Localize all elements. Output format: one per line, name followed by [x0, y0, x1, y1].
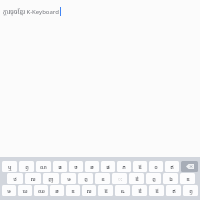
staticText: ឃ [22, 187, 28, 194]
button[interactable]: ញ [43, 173, 59, 184]
staticText: ឪ [155, 187, 159, 194]
button[interactable]: ឬ [2, 161, 17, 172]
staticText: ភ [122, 163, 126, 170]
button[interactable]: ឥ [166, 185, 181, 196]
staticText: ឪ [138, 163, 142, 170]
staticText: ឱ [104, 187, 108, 194]
button[interactable]: ០ [149, 161, 163, 172]
button[interactable]: ធ [53, 161, 67, 172]
button[interactable]: ឍ [82, 185, 96, 196]
button[interactable]: ឈ [34, 185, 48, 196]
button[interactable]: ឩ [115, 185, 130, 196]
staticText: ឰ [152, 175, 156, 182]
button[interactable]: ភ [117, 161, 131, 172]
staticText: ឳ [135, 175, 139, 182]
staticText: ឍ [86, 187, 92, 194]
button[interactable]: ៈ [112, 173, 127, 184]
staticText: ឧ [101, 175, 105, 182]
button[interactable]: ឱ [98, 185, 113, 196]
button[interactable]: ឯ [163, 173, 178, 184]
staticText: ឞ [67, 175, 71, 182]
staticText: ឭ [189, 187, 193, 194]
button[interactable]: ឭ [183, 185, 198, 196]
staticText: ណ [40, 163, 47, 170]
staticText: ធ [58, 163, 62, 170]
button[interactable]: ឍ [25, 173, 41, 184]
staticText: ឌ [186, 175, 190, 182]
button[interactable]: ឳ [132, 185, 147, 196]
staticText: ច [74, 163, 78, 170]
staticText: ញ [48, 175, 54, 182]
button[interactable]: ណ [36, 161, 51, 172]
staticText: ឆ [55, 187, 59, 194]
button[interactable]: ឳ [129, 173, 144, 184]
button[interactable]: ឥ [165, 161, 179, 172]
staticText: ឳ [138, 187, 142, 194]
button[interactable]: ឰ [78, 173, 93, 184]
staticText: ៈ [117, 175, 123, 182]
staticText: ឞ [7, 187, 11, 194]
staticText: ឥ [172, 187, 176, 194]
button[interactable]: ឭ [19, 161, 34, 172]
button[interactable]: ឰ [146, 173, 161, 184]
staticText: ឭ [25, 163, 29, 170]
staticText: ក្ដារចុចខ្មែរ K-Keyboard [3, 8, 59, 16]
staticText: ០ [154, 163, 158, 170]
staticText: ឈ [38, 187, 45, 194]
button[interactable]: ឆ [50, 185, 64, 196]
button[interactable]: Backspace [181, 161, 198, 172]
button[interactable]: ឪ [133, 161, 147, 172]
button[interactable]: ច [69, 161, 83, 172]
staticText: ឆ [90, 163, 94, 170]
button[interactable]: ឞ [2, 185, 16, 196]
button[interactable]: ឧ [95, 173, 110, 184]
button[interactable]: ឋ [7, 173, 23, 184]
staticText: ឍ [30, 175, 36, 182]
staticText: ឋ [13, 175, 17, 182]
staticText: ផ [106, 163, 110, 170]
staticText: ឥ [170, 163, 174, 170]
staticText: ឯ [169, 175, 173, 182]
button[interactable]: ឌ [66, 185, 80, 196]
staticText: ឩ [120, 187, 125, 194]
staticText: ឌ [71, 187, 75, 194]
button[interactable]: ផ [101, 161, 115, 172]
staticText: ឰ [84, 175, 88, 182]
button[interactable]: ឪ [149, 185, 164, 196]
staticText: ឬ [8, 163, 12, 170]
button[interactable]: ឆ [85, 161, 99, 172]
button[interactable]: ឃ [18, 185, 32, 196]
button[interactable]: ឌ [180, 173, 195, 184]
button[interactable]: ឞ [61, 173, 76, 184]
